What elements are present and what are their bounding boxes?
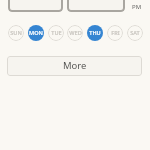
button[interactable]: PM — [131, 2, 143, 12]
button[interactable]: THU — [87, 25, 103, 41]
button[interactable]: SUN — [8, 25, 24, 41]
staticText: FRI — [111, 29, 120, 37]
staticText: PM — [132, 3, 142, 11]
button[interactable]: Hour — [8, 0, 63, 12]
button[interactable]: FRI — [107, 25, 123, 41]
staticText: THU — [89, 29, 101, 37]
button[interactable]: Minute — [67, 0, 125, 12]
button[interactable]: SAT — [127, 25, 143, 41]
staticText: WED — [69, 29, 82, 37]
staticText: MON — [29, 29, 43, 37]
button[interactable]: More — [7, 56, 142, 76]
staticText: SUN — [10, 29, 22, 37]
staticText: More — [63, 59, 87, 72]
button[interactable]: WED — [67, 25, 83, 41]
staticText: SAT — [130, 29, 140, 37]
button[interactable]: TUE — [48, 25, 64, 41]
staticText: TUE — [51, 29, 62, 37]
button[interactable]: MON — [28, 25, 44, 41]
